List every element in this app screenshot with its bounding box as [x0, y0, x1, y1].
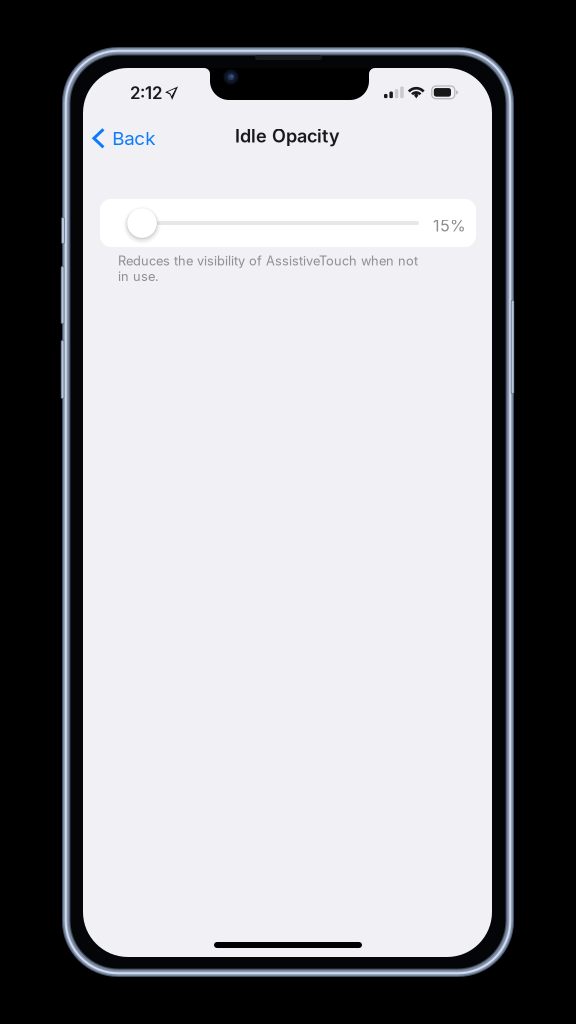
button[interactable]: Back — [83, 118, 165, 159]
staticText: 2:12 — [130, 83, 162, 103]
staticText: Back — [112, 127, 155, 150]
staticText: 15% — [433, 216, 466, 235]
staticText: Reduces the visibility of AssistiveTouch… — [118, 253, 418, 284]
staticText: Idle Opacity — [235, 125, 340, 147]
